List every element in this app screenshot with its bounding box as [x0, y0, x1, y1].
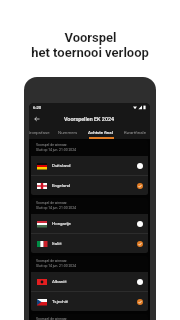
button[interactable]: Italië: [31, 234, 148, 253]
staticText: Sluit op 14 jun. 21:00 2024: [36, 148, 77, 152]
staticText: het toernooi verloop: [31, 45, 149, 60]
staticText: 6:20: [33, 105, 42, 110]
button[interactable]: Duitsland: [31, 156, 148, 175]
button[interactable]: Albanië: [31, 272, 148, 291]
staticText: Hongarije: [52, 221, 71, 226]
staticText: Albanië: [52, 279, 67, 284]
staticText: Voorspel de winnaar.: [36, 201, 68, 205]
button[interactable]: Achtste finale: [88, 126, 113, 139]
staticText: Voorspel de winnaar.: [36, 143, 68, 147]
button[interactable]: Hongarije: [31, 214, 148, 233]
staticText: Duitsland: [52, 163, 71, 168]
staticText: Kwartfinale: [124, 130, 146, 135]
button[interactable]: Kwartfinale: [122, 126, 147, 139]
staticText: Italië: [52, 241, 62, 246]
button[interactable]: Nummers 3: [58, 126, 78, 139]
staticText: Sluit op 14 jun. 21:00 2024: [36, 206, 77, 210]
button[interactable]: Tsjechië: [31, 292, 148, 311]
staticText: Engeland: [52, 183, 71, 188]
button[interactable]: Engeland: [31, 176, 148, 195]
staticText: Groepsfase: [29, 130, 50, 135]
staticText: Achtste finale: [88, 130, 113, 135]
staticText: Tsjechië: [52, 299, 69, 304]
staticText: Voorspellen EK 2024: [64, 116, 115, 122]
staticText: Sluit op 14 jun. 21:00 2024: [36, 264, 77, 268]
staticText: Voorspel de winnaar.: [36, 259, 68, 263]
button[interactable]: Groepsfase: [29, 126, 50, 139]
staticText: Voorspel de winnaar.: [36, 317, 68, 320]
staticText: Nummers 3: [58, 130, 78, 135]
staticText: Voorspel: [64, 30, 117, 45]
button[interactable]: Back: [33, 115, 41, 123]
